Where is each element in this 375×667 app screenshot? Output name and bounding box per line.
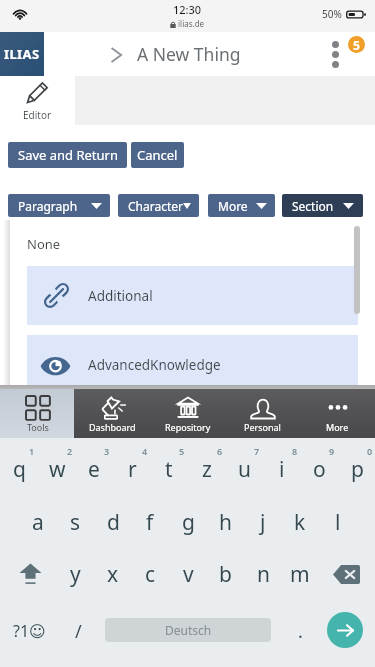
button[interactable]: More options: [321, 34, 349, 74]
staticText: m: [290, 560, 310, 589]
staticText: Editor: [23, 108, 52, 122]
staticText: More: [326, 421, 349, 433]
button[interactable]: Character: [118, 194, 199, 217]
button[interactable]: AdvancedKnowledge: [27, 335, 358, 394]
staticText: 5: [353, 37, 360, 53]
button[interactable]: ?1☺: [2, 600, 56, 662]
button[interactable]: Additional: [27, 266, 358, 325]
staticText: Tools: [27, 421, 49, 433]
staticText: s: [70, 508, 81, 537]
staticText: 5: [179, 445, 185, 457]
button[interactable]: 3: [75, 438, 113, 496]
staticText: 12:30: [173, 2, 202, 17]
button[interactable]: Dashboard: [75, 389, 150, 442]
staticText: g: [182, 508, 195, 537]
button[interactable]: Tools: [0, 389, 74, 442]
staticText: e: [88, 455, 100, 484]
button[interactable]: 8: [263, 438, 301, 496]
button[interactable]: a: [19, 496, 57, 548]
staticText: b: [219, 560, 232, 589]
staticText: 1: [29, 445, 35, 457]
button[interactable]: m: [281, 548, 319, 600]
staticText: More: [218, 198, 248, 214]
button[interactable]: g: [169, 496, 207, 548]
button[interactable]: Section: [282, 194, 363, 217]
staticText: Section: [292, 198, 334, 214]
button[interactable]: c: [131, 548, 169, 600]
staticText: 0: [367, 445, 373, 457]
staticText: p: [351, 455, 364, 484]
staticText: Personal: [244, 421, 281, 433]
button[interactable]: Shift: [2, 548, 58, 600]
staticText: None: [27, 235, 61, 253]
staticText: h: [219, 508, 232, 537]
button[interactable]: b: [206, 548, 244, 600]
staticText: A New Thing: [137, 42, 241, 66]
staticText: Additional: [88, 287, 153, 305]
button[interactable]: d: [94, 496, 132, 548]
button[interactable]: 7: [225, 438, 263, 496]
button[interactable]: Cancel: [131, 142, 184, 168]
button[interactable]: 6: [188, 438, 226, 496]
staticText: Character: [128, 198, 183, 214]
button[interactable]: Editor: [0, 76, 75, 125]
button[interactable]: v: [169, 548, 207, 600]
button[interactable]: Paragraph: [8, 194, 110, 217]
button[interactable]: x: [94, 548, 132, 600]
staticText: 7: [254, 445, 260, 457]
staticText: j: [260, 508, 266, 537]
button[interactable]: More: [300, 389, 375, 442]
staticText: Cancel: [137, 146, 178, 164]
button[interactable]: f: [131, 496, 169, 548]
staticText: Deutsch: [165, 622, 212, 638]
staticText: y: [70, 560, 81, 589]
button[interactable]: k: [281, 496, 319, 548]
button[interactable]: s: [56, 496, 94, 548]
staticText: ilias.de: [178, 18, 205, 29]
staticText: a: [32, 508, 44, 537]
button[interactable]: Save and Return: [8, 142, 127, 168]
button[interactable]: y: [56, 548, 94, 600]
button[interactable]: More: [208, 194, 275, 217]
staticText: i: [279, 455, 285, 484]
button[interactable]: h: [206, 496, 244, 548]
staticText: Dashboard: [89, 421, 136, 433]
staticText: w: [49, 455, 66, 484]
button[interactable]: Enter: [327, 612, 363, 648]
button[interactable]: Repository: [150, 389, 225, 442]
button[interactable]: 0: [338, 438, 375, 496]
button[interactable]: 9: [300, 438, 338, 496]
button[interactable]: .: [278, 600, 322, 662]
staticText: c: [145, 560, 156, 589]
staticText: v: [183, 560, 194, 589]
staticText: Paragraph: [18, 198, 78, 214]
staticText: 4: [142, 445, 148, 457]
button[interactable]: /: [56, 600, 100, 662]
staticText: Save and Return: [18, 146, 118, 164]
staticText: Repository: [165, 421, 211, 433]
button[interactable]: 4: [113, 438, 151, 496]
staticText: 9: [329, 445, 335, 457]
staticText: q: [13, 455, 26, 484]
staticText: z: [202, 455, 212, 484]
button[interactable]: Deutsch: [105, 618, 271, 642]
staticText: 3: [104, 445, 110, 457]
button[interactable]: n: [244, 548, 282, 600]
staticText: l: [335, 508, 341, 537]
button[interactable]: 1: [0, 438, 38, 496]
button[interactable]: Notifications, 5: [348, 36, 365, 53]
button[interactable]: j: [244, 496, 282, 548]
staticText: /: [75, 619, 82, 644]
button[interactable]: Backspace: [319, 548, 373, 600]
staticText: u: [238, 455, 251, 484]
button[interactable]: 2: [38, 438, 76, 496]
button[interactable]: l: [319, 496, 357, 548]
staticText: d: [107, 508, 120, 537]
staticText: AdvancedKnowledge: [88, 356, 221, 374]
button[interactable]: 5: [150, 438, 188, 496]
staticText: k: [294, 508, 306, 537]
button[interactable]: Personal: [225, 389, 300, 442]
button[interactable]: ILIAS: [0, 32, 44, 76]
staticText: ?1☺: [13, 620, 46, 642]
staticText: 2: [67, 445, 73, 457]
